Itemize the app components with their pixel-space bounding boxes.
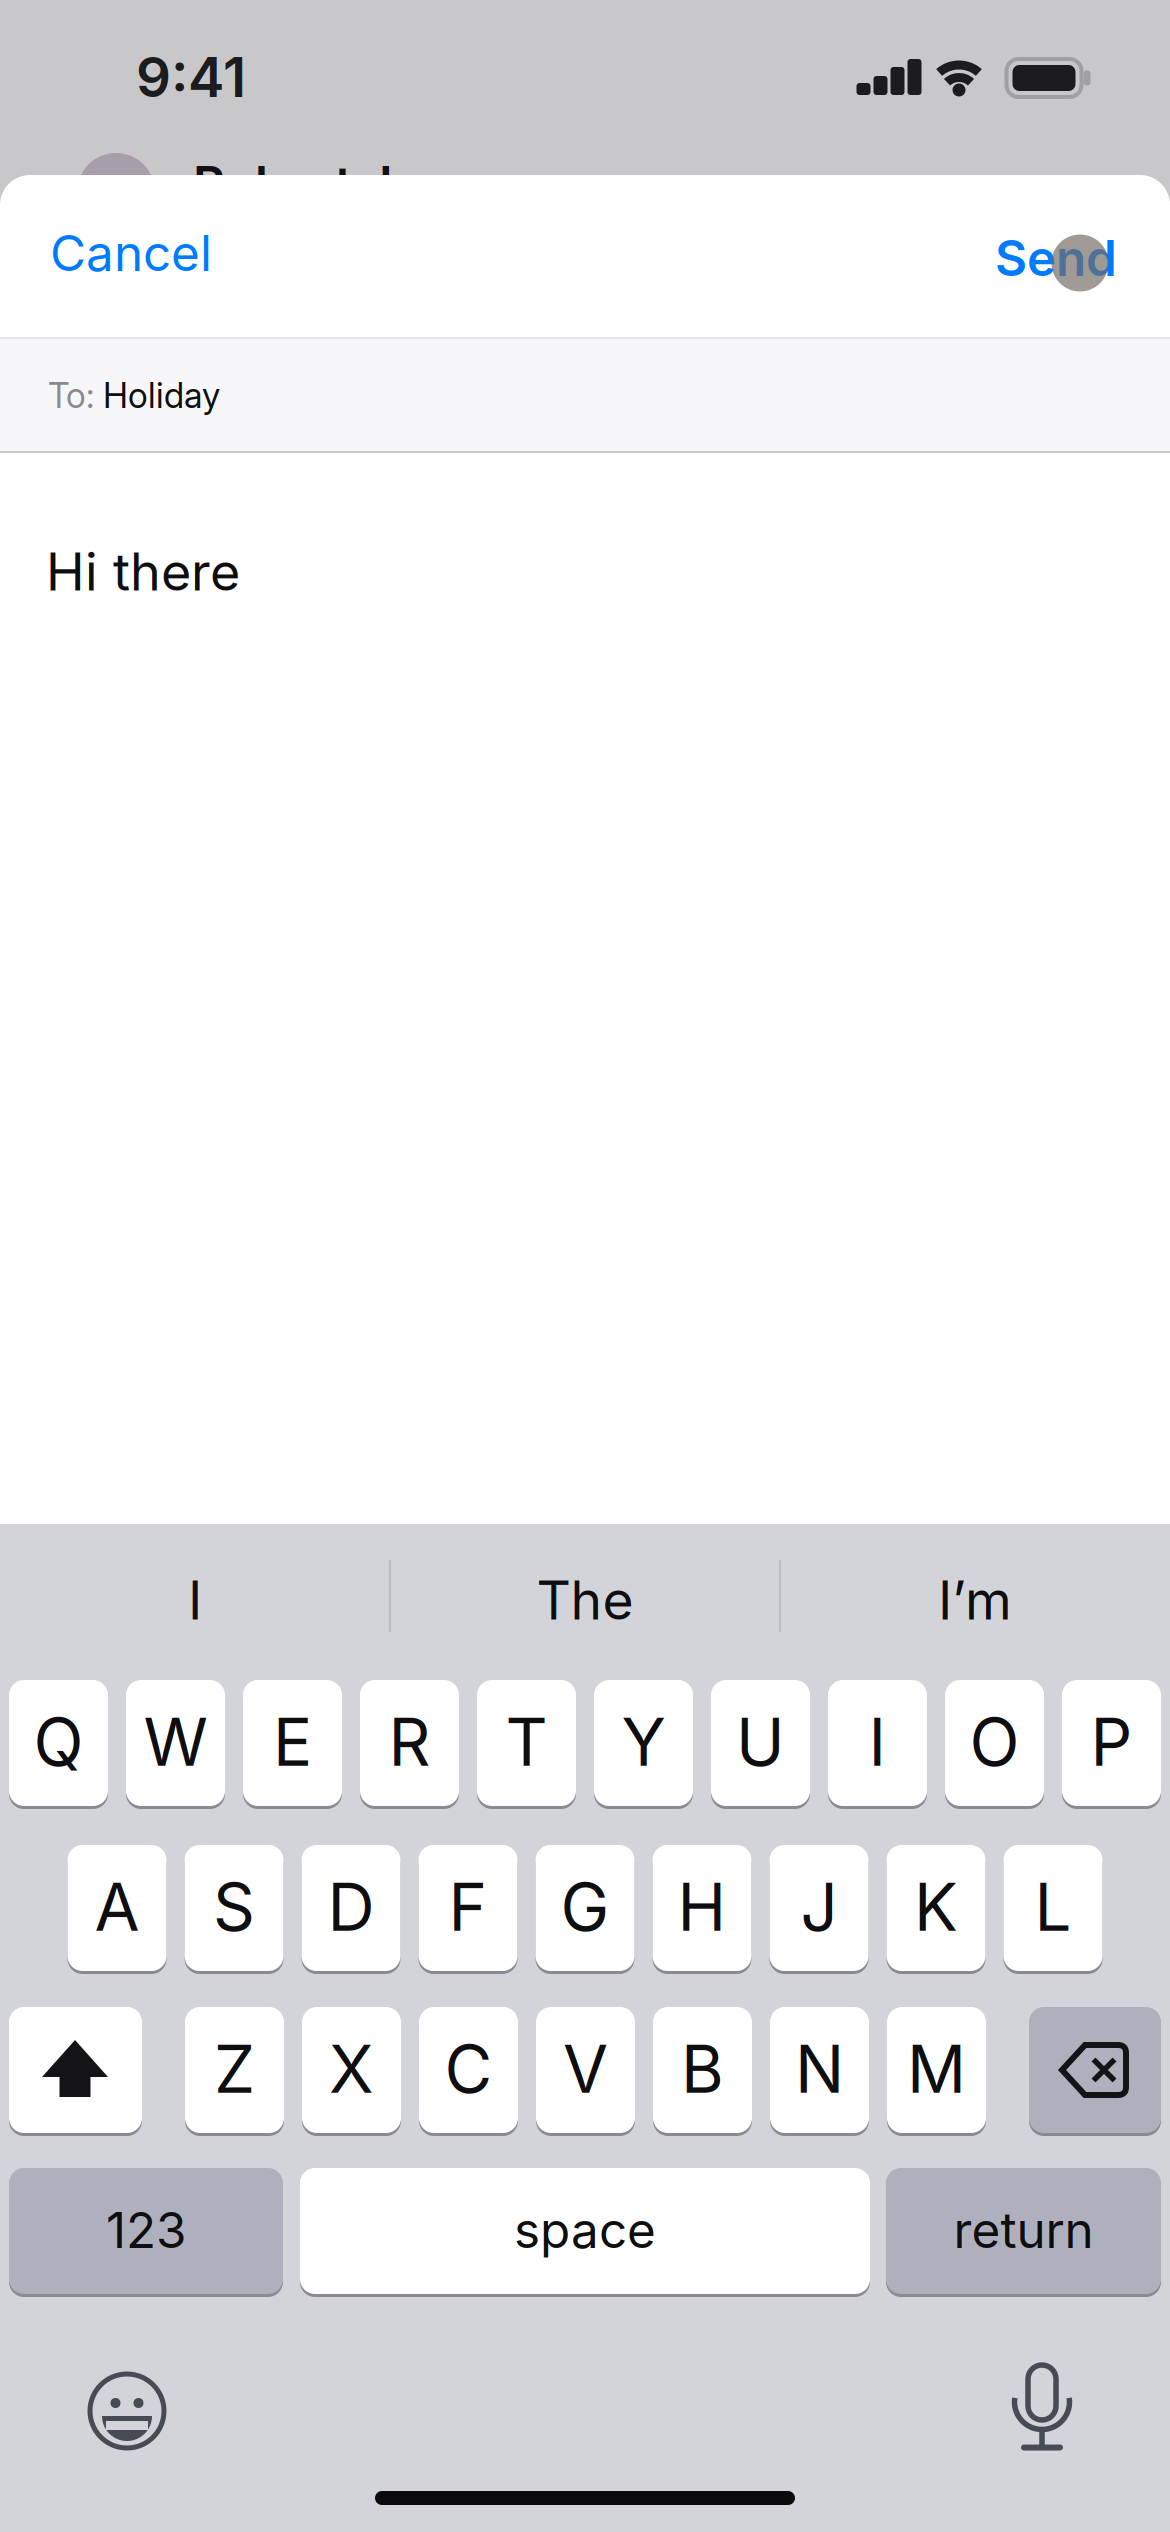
staticText: Send [995,229,1117,287]
staticText: To: [48,375,103,416]
staticText: F [448,1868,487,1946]
button[interactable]: Emoji [87,2371,167,2451]
staticText: D [327,1868,374,1946]
button[interactable]: I [828,1680,927,1806]
button[interactable]: X [302,2007,401,2133]
button[interactable]: F [418,1845,517,1971]
button[interactable]: C [419,2007,518,2133]
staticText: U [736,1703,785,1781]
button[interactable]: P [1062,1680,1161,1806]
button[interactable]: return [886,2168,1161,2294]
button[interactable]: To: [0,339,1170,452]
staticText: return [953,2201,1093,2259]
button[interactable]: L [1003,1845,1102,1971]
staticText: W [143,1703,207,1781]
staticText: Cancel [50,224,212,282]
staticText: G [560,1868,609,1946]
staticText: L [1034,1868,1071,1946]
button[interactable]: J [769,1845,868,1971]
button[interactable]: I [0,1524,390,1680]
button[interactable]: Y [594,1680,693,1806]
button[interactable]: B [653,2007,752,2133]
button[interactable]: Numbers [9,2168,283,2294]
staticText: A [94,1868,139,1946]
staticText: 9:41 [136,45,246,109]
button[interactable]: H [652,1845,751,1971]
staticText: C [444,2030,492,2108]
button[interactable]: Cancel [50,224,212,282]
staticText: N [795,2030,844,2108]
button[interactable]: K [886,1845,985,1971]
button[interactable]: space [300,2168,870,2294]
button[interactable]: I’m [780,1524,1170,1680]
staticText: E [273,1703,312,1781]
staticText: R [388,1703,430,1781]
button[interactable]: Send [995,229,1117,287]
button[interactable]: Dictate [1010,2365,1074,2453]
staticText: I [188,1568,202,1631]
staticText: H [677,1868,726,1946]
button[interactable]: W [126,1680,225,1806]
button[interactable]: A [67,1845,166,1971]
staticText: T [505,1703,547,1781]
staticText: I [868,1703,886,1781]
button[interactable]: Shift [9,2007,142,2133]
staticText: Holiday [103,375,220,416]
button[interactable]: U [711,1680,810,1806]
button[interactable]: E [243,1680,342,1806]
button[interactable]: V [536,2007,635,2133]
staticText: Hi there [46,541,240,602]
button[interactable]: O [945,1680,1044,1806]
staticText: I’m [938,1568,1012,1631]
staticText: Robert Jones [193,155,509,213]
staticText: 123 [106,2201,186,2259]
button[interactable]: D [301,1845,400,1971]
staticText: Q [33,1703,83,1781]
staticText: O [969,1703,1019,1781]
button[interactable]: Q [9,1680,108,1806]
button[interactable]: R [360,1680,459,1806]
staticText: S [213,1868,255,1946]
button[interactable]: N [770,2007,869,2133]
button[interactable]: The [390,1524,780,1680]
staticText: The [536,1568,633,1631]
staticText: K [914,1868,958,1946]
button[interactable]: G [535,1845,634,1971]
staticText: X [329,2030,374,2108]
button[interactable]: T [477,1680,576,1806]
staticText: B [681,2030,724,2108]
button[interactable]: Z [185,2007,284,2133]
button[interactable]: M [887,2007,986,2133]
staticText: M [907,2030,966,2108]
staticText: J [800,1868,837,1946]
staticText: P [1090,1703,1132,1781]
staticText: Z [214,2030,255,2108]
button[interactable]: Delete [1029,2007,1161,2133]
staticText: V [563,2030,608,2108]
staticText: space [514,2201,656,2259]
button[interactable]: S [184,1845,283,1971]
staticText: Y [621,1703,665,1781]
